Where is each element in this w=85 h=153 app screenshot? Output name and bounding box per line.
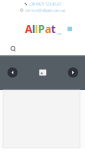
staticText: P [38, 22, 45, 36]
staticText: +38 (067) 123-45-67 [29, 1, 61, 6]
staticText: t [51, 22, 56, 36]
button[interactable]: Previous slide [7, 67, 17, 77]
staticText: a [45, 22, 51, 36]
button[interactable]: +38 (067) 123-45-67 [24, 1, 61, 6]
button[interactable]: service@allpat.com.ua [20, 7, 65, 13]
staticText: service@allpat.com.ua [25, 7, 65, 13]
button[interactable]: Next slide [68, 67, 78, 77]
button[interactable]: Search [10, 46, 16, 52]
staticText: A [25, 22, 32, 36]
staticText: l [32, 22, 35, 36]
staticText: l [35, 22, 38, 36]
button[interactable]: A [25, 22, 61, 36]
staticText: .ua [56, 31, 61, 36]
